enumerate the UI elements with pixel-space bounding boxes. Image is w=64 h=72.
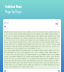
staticText: Untitled Note — [5, 5, 22, 9]
button[interactable]: Untitled Note — [5, 5, 22, 14]
staticText: Page by Page — [5, 10, 22, 14]
button[interactable]: Previous page — [3, 19, 61, 72]
